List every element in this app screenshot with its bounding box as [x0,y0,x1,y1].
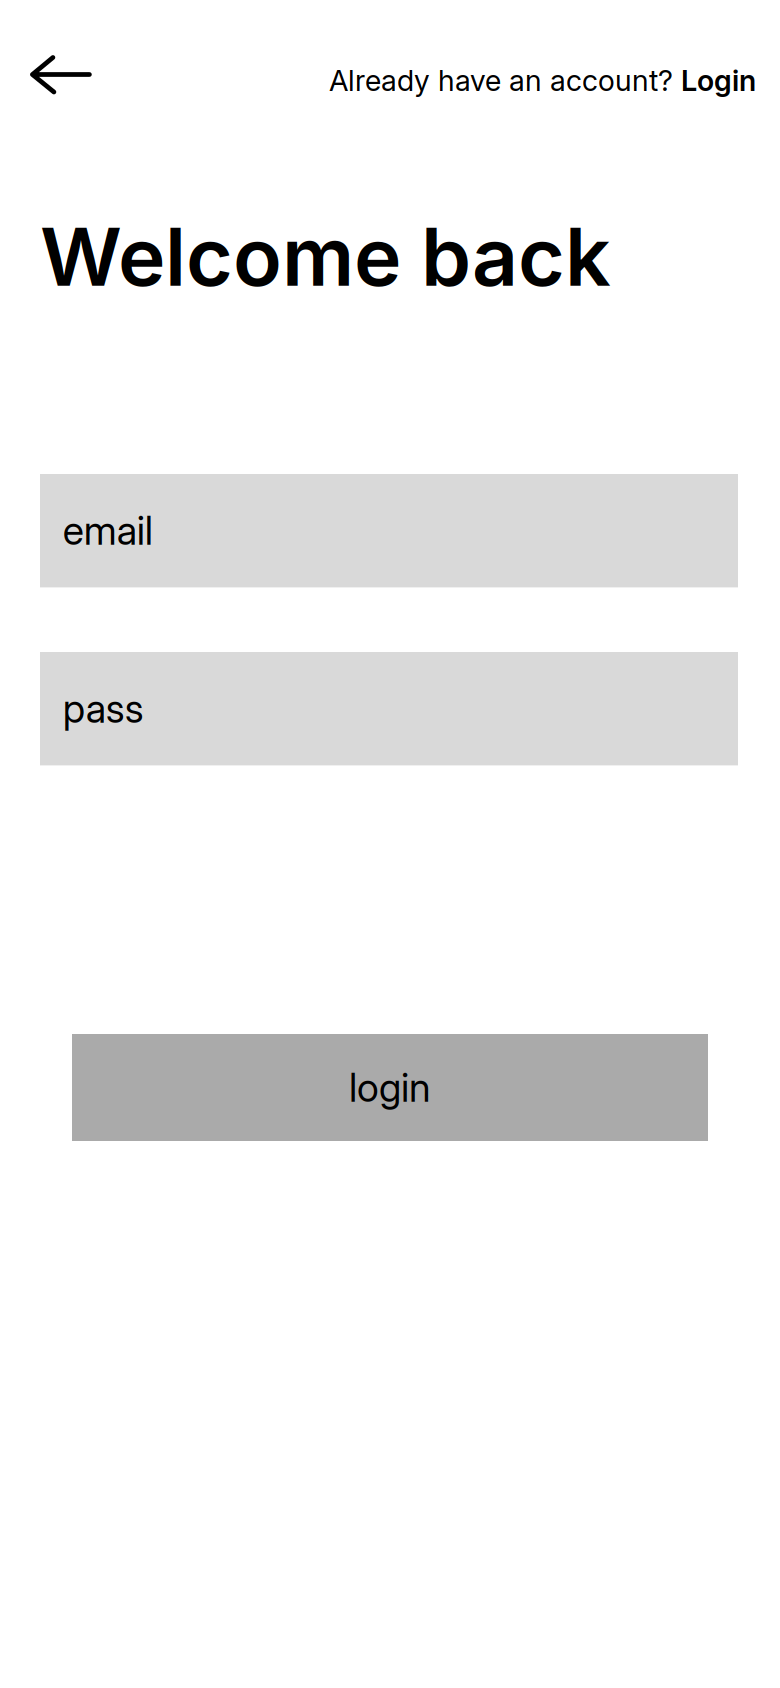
button[interactable]: email [40,474,738,587]
staticText: Login [681,63,756,98]
staticText: login [349,1064,431,1111]
button[interactable]: Back [29,56,91,93]
staticText: Already have an account? [329,63,681,98]
staticText: Welcome back [40,208,611,305]
button[interactable]: pass [40,652,738,765]
staticText: pass [63,685,144,732]
button[interactable]: Already have an account? [329,63,756,98]
staticText: email [63,507,153,554]
button[interactable]: login [72,1034,708,1141]
